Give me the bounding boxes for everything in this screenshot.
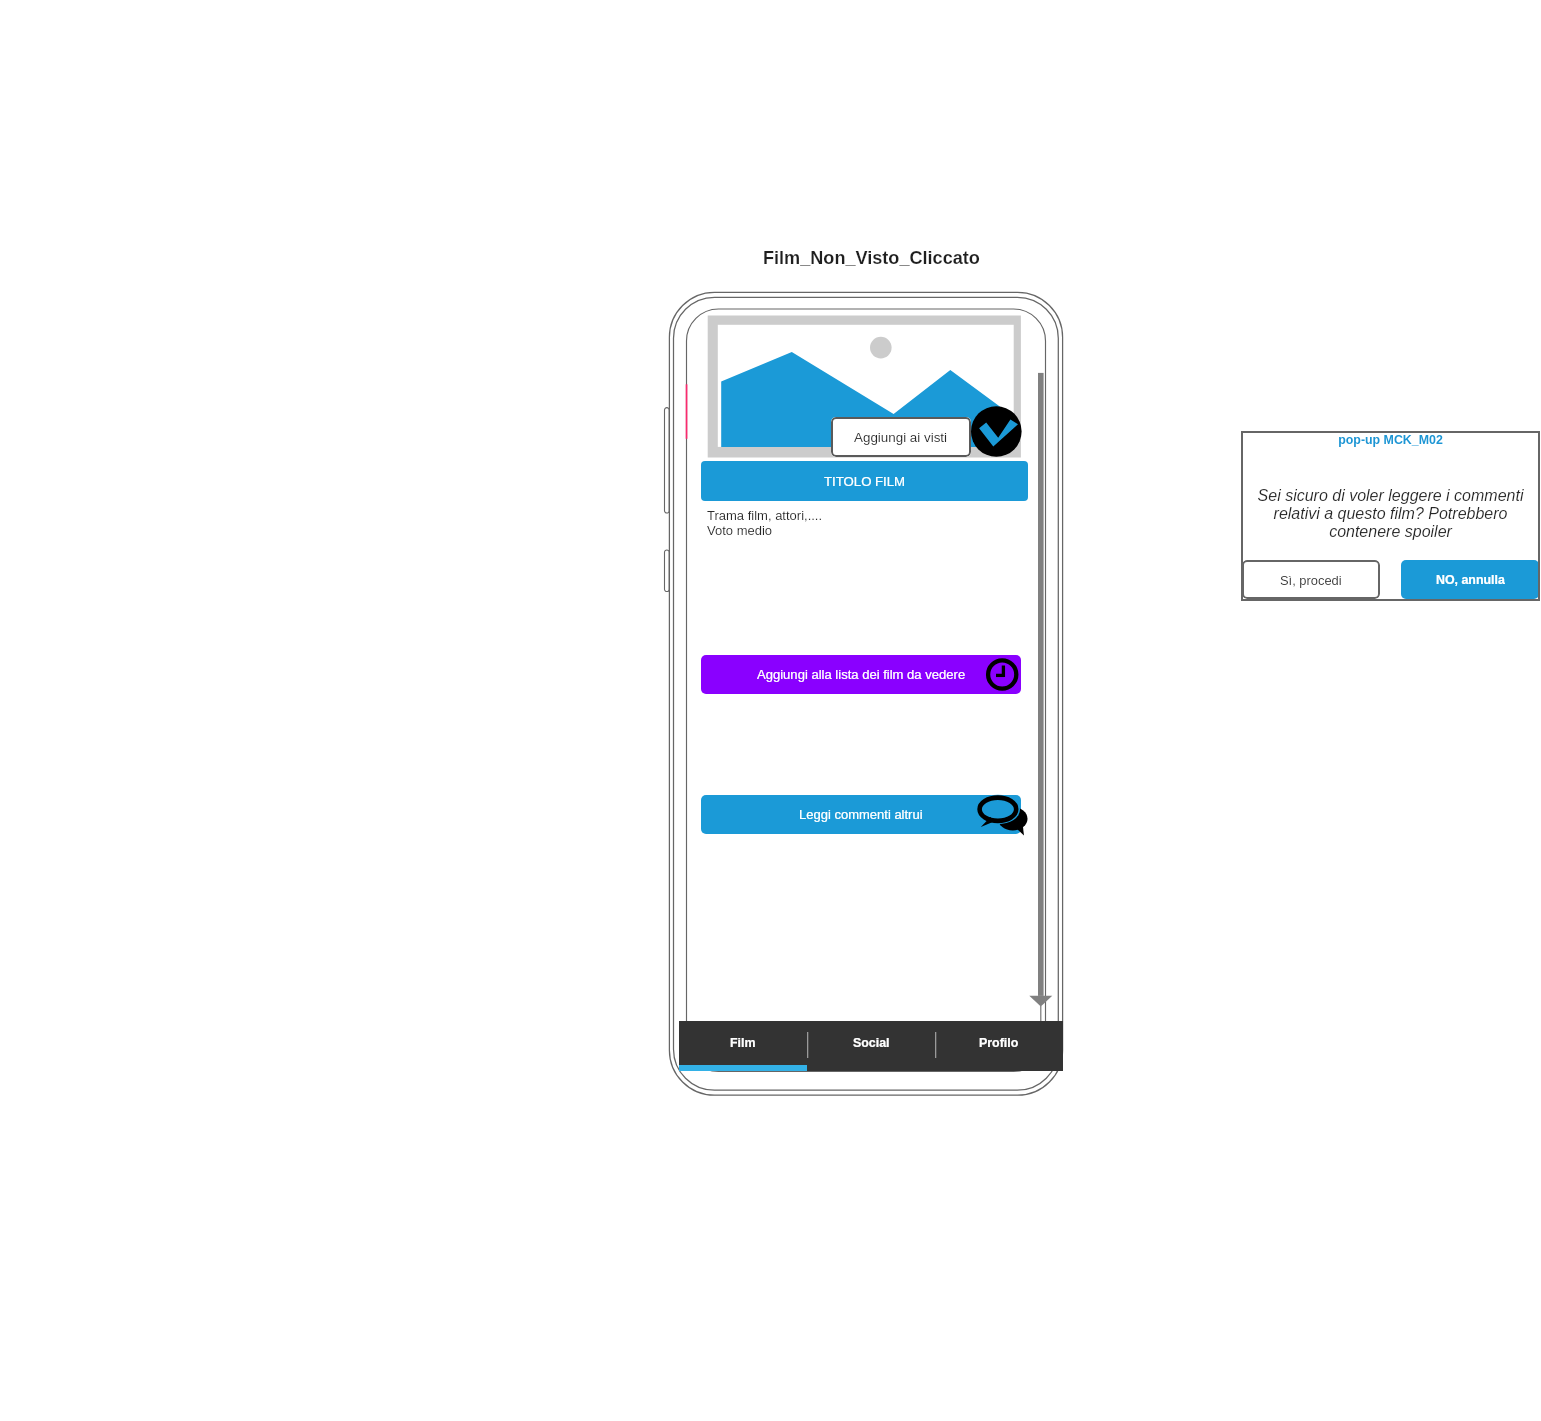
staticText: Sei sicuro di voler leggere i commenti r… <box>1248 487 1533 540</box>
staticText: NO, annulla <box>1436 573 1505 587</box>
staticText: Film_Non_Visto_Cliccato <box>763 248 980 268</box>
staticText: Aggiungi ai visti <box>854 430 948 445</box>
button[interactable]: Profilo <box>935 1021 1063 1065</box>
staticText: Film <box>730 1036 756 1050</box>
button[interactable]: Social <box>807 1021 935 1065</box>
button[interactable]: Leggi commenti altrui <box>972 789 1028 841</box>
button[interactable]: Aggiungi ai visti <box>831 417 971 457</box>
staticText: Trama film, attori,.... Voto medio <box>707 508 823 538</box>
button[interactable]: Aggiungi ai visti <box>971 406 1022 457</box>
staticText: Sì, procedi <box>1280 573 1342 587</box>
button[interactable]: NO, annulla <box>1401 560 1539 599</box>
staticText: Profilo <box>979 1036 1019 1050</box>
staticText: Social <box>853 1036 890 1050</box>
button[interactable]: Aggiungi alla lista dei film da vedere <box>701 655 1021 694</box>
button[interactable]: TITOLO FILM <box>701 461 1028 501</box>
button[interactable]: Sì, procedi <box>1242 560 1380 599</box>
staticText: Leggi commenti altrui <box>799 807 923 822</box>
staticText: TITOLO FILM <box>824 474 906 489</box>
button[interactable]: Leggi commenti altrui <box>701 795 1021 834</box>
staticText: pop-up MCK_M02 <box>1241 433 1540 447</box>
button[interactable]: Aggiungi alla lista dei film da vedere <box>985 657 1019 691</box>
button[interactable]: Film <box>679 1021 807 1065</box>
staticText: Aggiungi alla lista dei film da vedere <box>757 667 966 682</box>
